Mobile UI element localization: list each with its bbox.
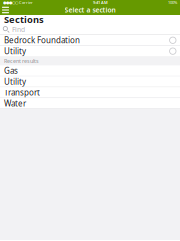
staticText: Bedrock Foundation [4, 35, 80, 45]
staticText: Water [4, 98, 26, 109]
button[interactable]: Gas [0, 65, 180, 76]
staticText: Transport [4, 87, 40, 98]
staticText: Sections [4, 13, 44, 26]
button[interactable]: Transport [0, 87, 180, 98]
button[interactable]: Bedrock Foundation [0, 35, 180, 45]
staticText: Find [12, 25, 25, 34]
button[interactable]: Utility [0, 76, 180, 87]
staticText: Select a section [64, 6, 115, 14]
staticText: Recent results [4, 57, 39, 64]
staticText: Utility [4, 76, 26, 87]
staticText: 9:41 AM [93, 0, 108, 5]
button[interactable]: Menu [0, 5, 16, 15]
button[interactable]: Utility [0, 46, 180, 56]
staticText: Utility [4, 46, 26, 56]
staticText: ●●●○○ Carrier [3, 0, 33, 5]
staticText: Gas [4, 65, 18, 76]
button[interactable]: Water [0, 98, 180, 109]
staticText: 100% [168, 0, 177, 5]
